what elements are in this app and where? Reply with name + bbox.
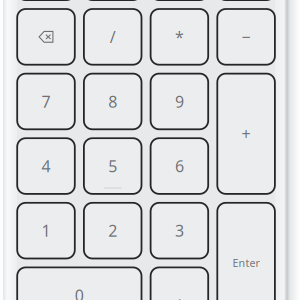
button[interactable]: − [217, 9, 275, 65]
staticText: 1 [41, 220, 50, 241]
button[interactable]: * [151, 9, 208, 65]
button[interactable]: 5 [84, 138, 141, 194]
button[interactable]: 1 [17, 203, 75, 258]
button[interactable]: 3 [151, 203, 208, 258]
button[interactable]: 4 [17, 138, 75, 194]
staticText: + [242, 123, 251, 144]
staticText: Enter [233, 256, 260, 270]
button[interactable]: 0 [17, 267, 141, 300]
staticText: 6 [175, 155, 184, 177]
staticText: 2 [108, 220, 117, 241]
staticText: 0 [75, 285, 84, 300]
staticText: − [242, 26, 251, 47]
staticText: . [177, 285, 181, 300]
button[interactable]: / [84, 9, 141, 65]
button[interactable]: 9 [151, 74, 208, 129]
button[interactable]: . [151, 267, 208, 300]
button[interactable]: Delete [17, 9, 75, 65]
staticText: * [175, 26, 184, 47]
staticText: / [110, 26, 116, 47]
staticText: 9 [175, 91, 184, 112]
button[interactable]: Enter [217, 203, 275, 300]
staticText: 3 [175, 220, 184, 241]
button[interactable]: 2 [84, 203, 141, 258]
staticText: 8 [108, 91, 117, 112]
button[interactable]: + [217, 74, 275, 194]
button[interactable]: 6 [151, 138, 208, 194]
button[interactable]: 7 [17, 74, 75, 129]
staticText: 4 [41, 155, 50, 177]
staticText: 5 [108, 155, 117, 177]
button[interactable]: 8 [84, 74, 141, 129]
staticText: 7 [41, 91, 50, 112]
